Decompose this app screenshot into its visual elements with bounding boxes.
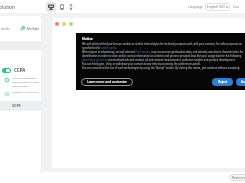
staticText: Notice	[82, 36, 93, 40]
button[interactable]: Restore se	[229, 174, 245, 181]
staticText: We and selected third parties use cookie…	[82, 42, 245, 70]
staticText: Cou	[233, 5, 239, 9]
staticText: CCPA acknowledgment through interaction …	[12, 77, 39, 88]
button[interactable]: CCPA	[2, 67, 41, 73]
button[interactable]: English (US)	[205, 3, 230, 11]
staticText: Restore se	[232, 176, 245, 180]
button[interactable]: GDPR	[0, 101, 41, 111]
staticText: CCPA	[14, 67, 26, 73]
staticText: Accept	[241, 80, 245, 84]
staticText: Language	[188, 5, 203, 9]
button[interactable]: Learn more and customize	[81, 78, 133, 86]
button[interactable]: Desktop preview	[46, 2, 56, 12]
button[interactable]: dards	[0, 16, 18, 41]
staticText: Multiple	[27, 27, 40, 31]
button[interactable]: Tablet preview	[57, 2, 67, 12]
staticText: olution	[0, 4, 16, 11]
button[interactable]: Multiple	[18, 16, 41, 41]
staticText: GDPR	[12, 104, 21, 108]
staticText: Applied to US users only	[12, 91, 39, 94]
staticText: dards	[1, 27, 10, 31]
staticText: Reject	[218, 80, 228, 84]
staticText: Learn more and customize	[87, 80, 127, 84]
button[interactable]: Accept	[236, 78, 245, 86]
staticText: English (US)	[207, 5, 225, 9]
button[interactable]: Reject	[212, 78, 233, 86]
button[interactable]: Mobile preview	[66, 2, 76, 12]
